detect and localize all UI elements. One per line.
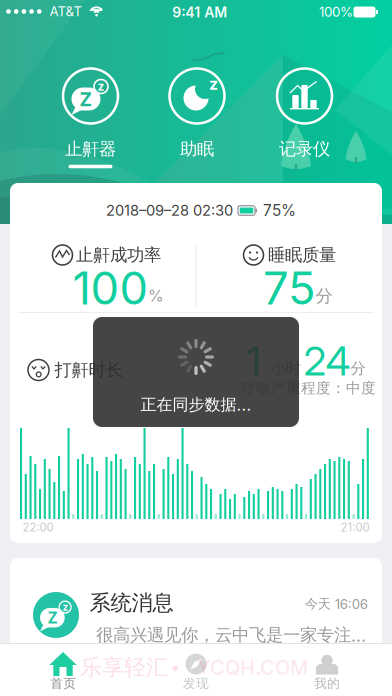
button[interactable]: Z bbox=[40, 38, 140, 172]
staticText: 9:41 AM bbox=[172, 4, 227, 21]
staticText: • bbox=[171, 657, 179, 678]
staticText: Z bbox=[48, 607, 57, 628]
staticText: AT&T bbox=[49, 3, 82, 19]
button[interactable]: z bbox=[147, 38, 247, 172]
staticText: z bbox=[209, 74, 218, 94]
staticText: 助眠 bbox=[180, 138, 214, 160]
staticText: 打鼾时长 bbox=[54, 359, 122, 381]
staticText: 很高兴遇见你，云中飞是一家专注... bbox=[96, 624, 366, 646]
staticText: 75 bbox=[263, 261, 316, 315]
staticText: 分 bbox=[315, 285, 332, 307]
button[interactable]: 首页 bbox=[18, 644, 108, 696]
staticText: 正在同步数据... bbox=[140, 395, 251, 415]
button[interactable]: 我的 bbox=[282, 644, 372, 696]
staticText: % bbox=[148, 286, 164, 306]
staticText: 首页 bbox=[50, 675, 76, 691]
staticText: 100% bbox=[319, 4, 353, 20]
staticText: 乐享轻汇 bbox=[80, 654, 168, 681]
staticText: 分 bbox=[350, 359, 365, 378]
staticText: z bbox=[98, 78, 104, 94]
staticText: Z bbox=[80, 85, 92, 112]
button[interactable]: Z bbox=[10, 558, 382, 650]
staticText: 止鼾成功率 bbox=[76, 244, 161, 266]
staticText: 21:00 bbox=[340, 521, 369, 534]
staticText: 发现 bbox=[183, 675, 209, 691]
staticText: 1 bbox=[246, 337, 261, 385]
staticText: 系统消息 bbox=[89, 590, 173, 616]
staticText: 睡眠质量 bbox=[268, 244, 336, 266]
staticText: 今天 16:06 bbox=[305, 596, 368, 612]
staticText: 24 bbox=[303, 337, 350, 385]
staticText: z bbox=[63, 600, 68, 614]
staticText: 记录仪 bbox=[279, 138, 330, 160]
staticText: 22:00 bbox=[22, 521, 53, 534]
staticText: 2018–09–28 02:30 bbox=[106, 202, 233, 219]
staticText: 止鼾器 bbox=[65, 138, 116, 160]
staticText: 75% bbox=[263, 201, 296, 220]
button[interactable]: 发现 bbox=[151, 644, 241, 696]
staticText: 小时 bbox=[270, 359, 300, 378]
staticText: YCQH.COM bbox=[197, 655, 308, 680]
staticText: 100 bbox=[73, 261, 149, 315]
button[interactable]: 记录仪 bbox=[254, 38, 354, 172]
staticText: 呼噜严重程度：中度 bbox=[241, 379, 376, 397]
staticText: 我的 bbox=[314, 675, 340, 691]
